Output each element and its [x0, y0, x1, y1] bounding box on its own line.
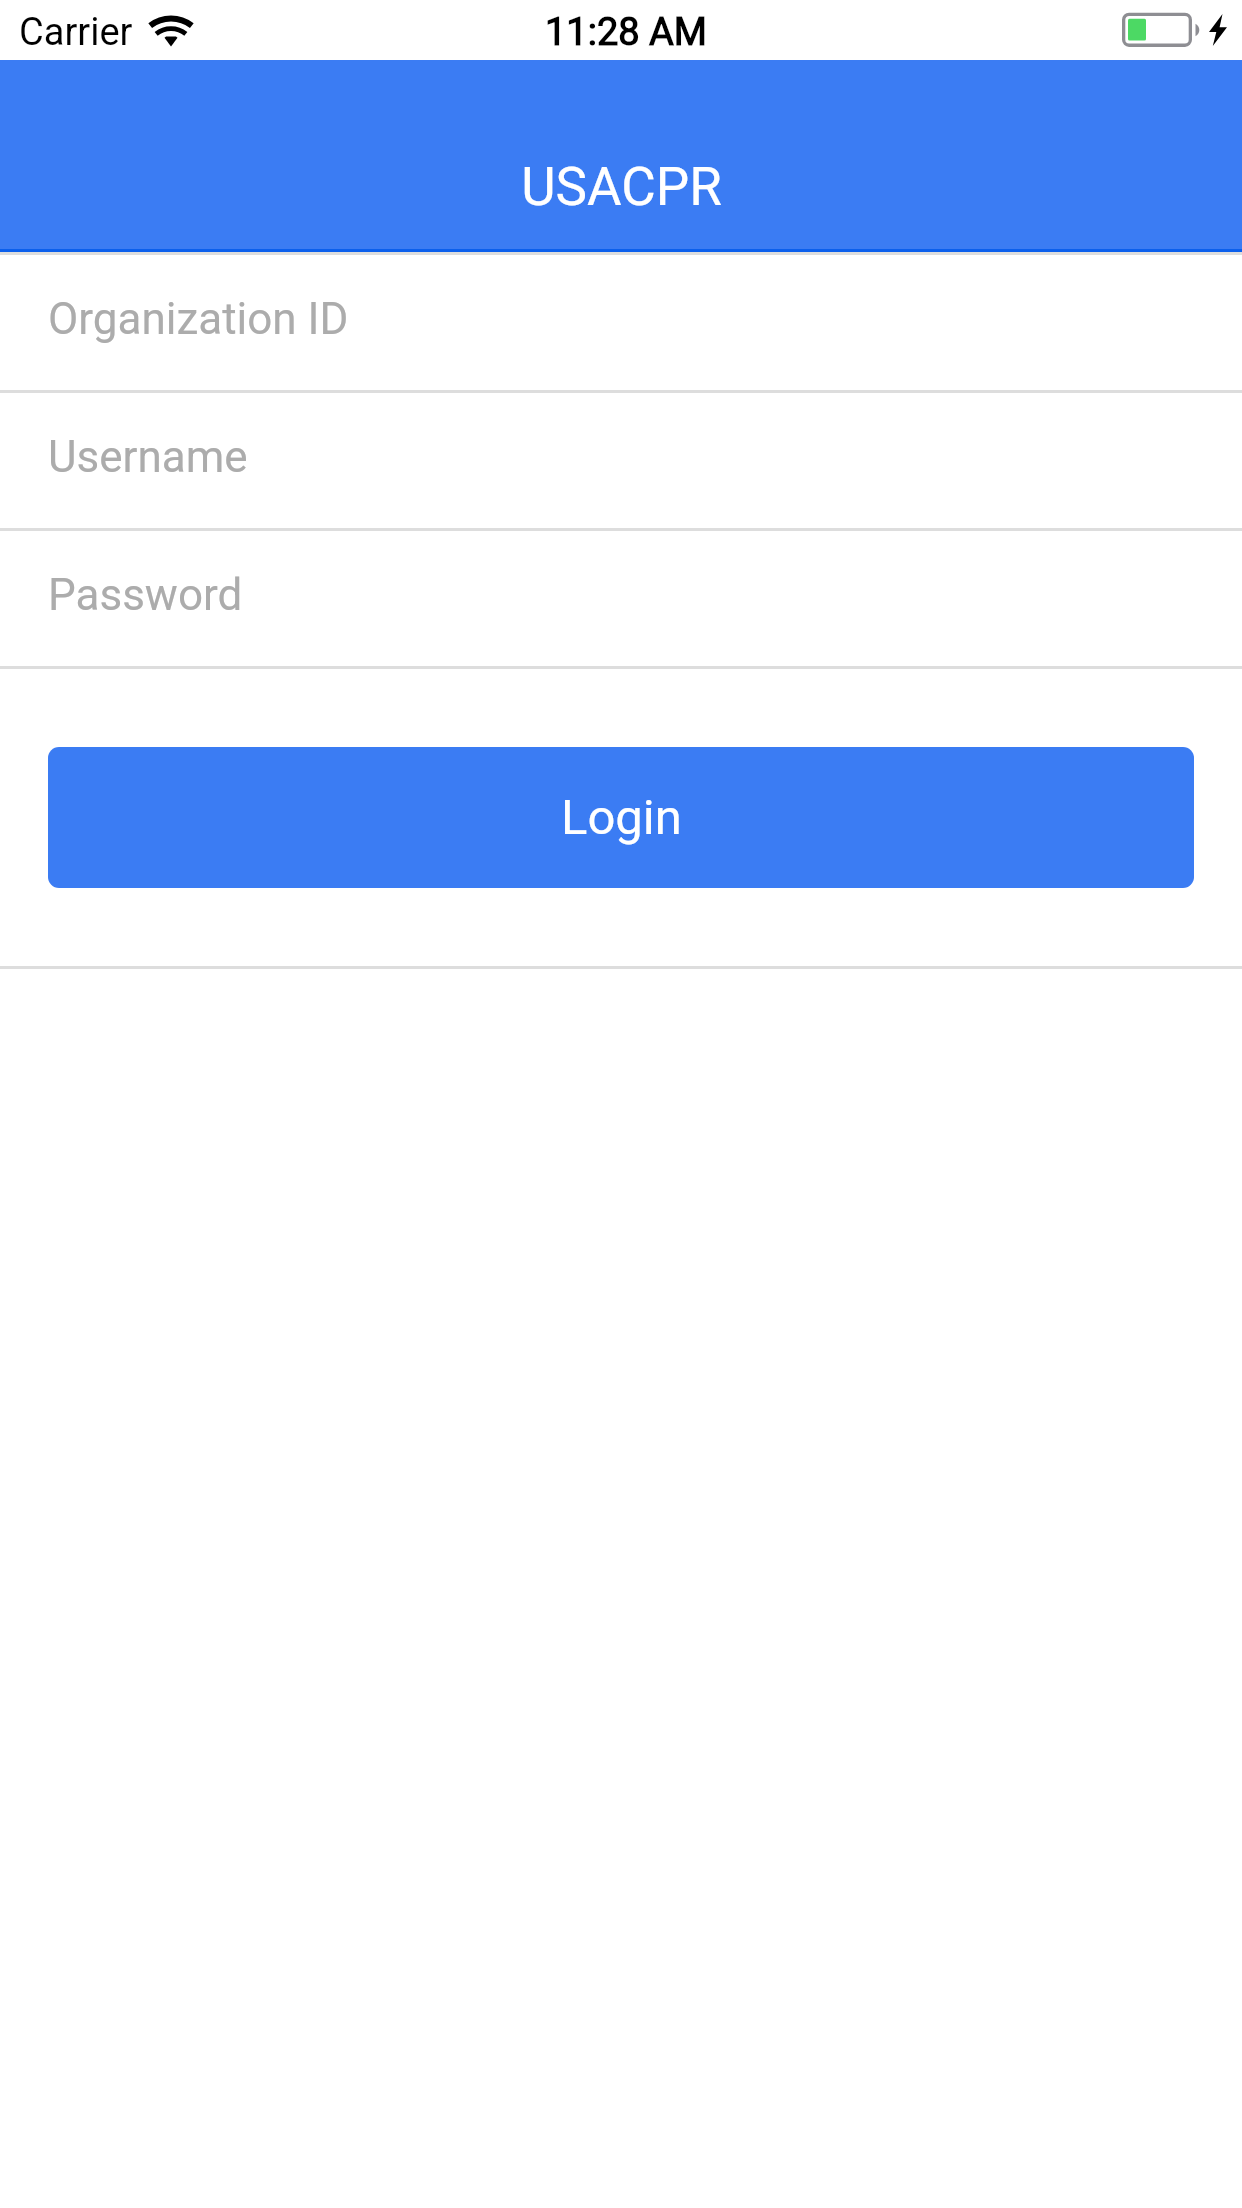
button[interactable]: Organization ID	[0, 255, 1242, 390]
button[interactable]: Login	[48, 747, 1194, 888]
staticText: Password	[48, 569, 243, 621]
other: Battery charging	[1118, 8, 1232, 52]
staticText: 11:28 AM	[545, 10, 708, 55]
staticText: Organization ID	[48, 293, 349, 345]
staticText: Carrier	[19, 10, 133, 55]
other: Wi-Fi signal	[148, 14, 194, 46]
button[interactable]: Password	[0, 531, 1242, 666]
staticText: Login	[561, 789, 682, 846]
staticText: USACPR	[521, 156, 722, 218]
staticText: Username	[48, 431, 248, 483]
button[interactable]: Username	[0, 393, 1242, 528]
